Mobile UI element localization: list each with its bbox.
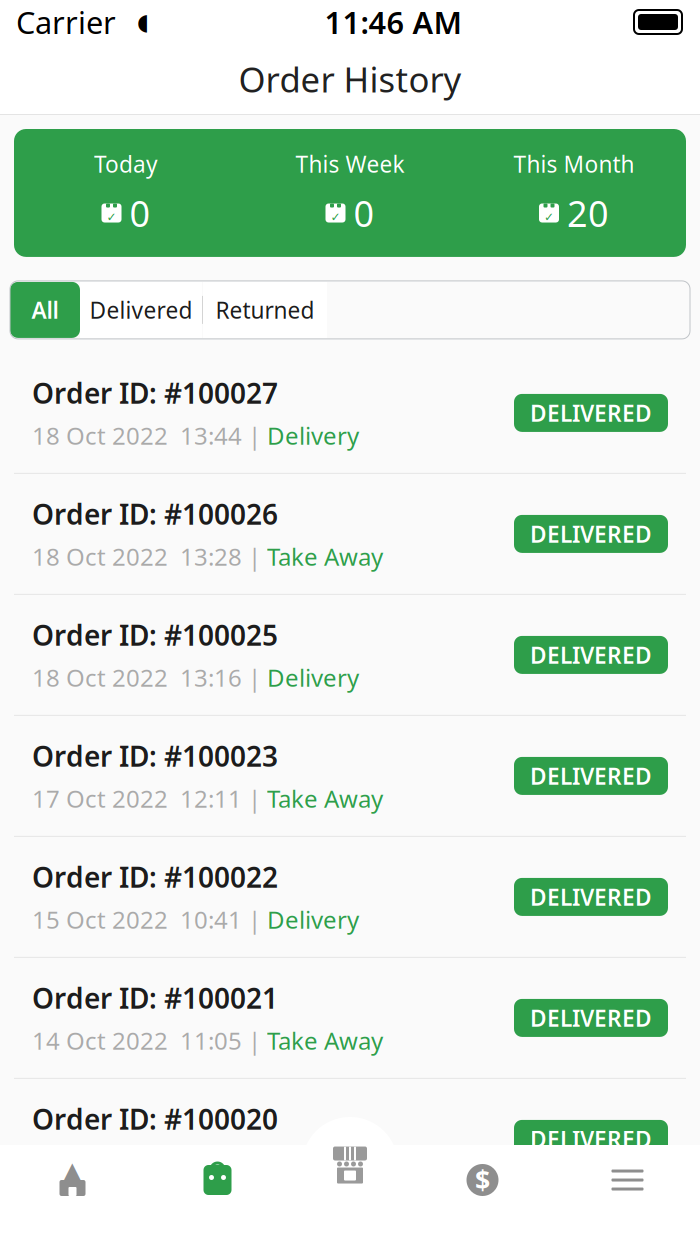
staticText: 11:46 AM: [324, 2, 461, 42]
staticText: Order ID: #100026: [32, 495, 278, 533]
staticText: 18 Oct 2022 13:28: [32, 541, 242, 572]
staticText: Delivered: [89, 295, 192, 325]
staticText: DELIVERED: [530, 640, 652, 670]
staticText: |: [248, 662, 261, 693]
staticText: Order ID: #100022: [32, 858, 278, 896]
button[interactable]: Order ID: #100025: [0, 595, 700, 715]
button[interactable]: All: [10, 282, 80, 338]
staticText: All: [31, 295, 58, 325]
button[interactable]: Returned: [203, 282, 327, 338]
staticText: |: [248, 783, 261, 814]
staticText: This Week: [295, 149, 404, 179]
button[interactable]: Orders: [145, 1145, 290, 1215]
button[interactable]: Order ID: #100026: [0, 474, 700, 594]
staticText: This Month: [513, 149, 634, 179]
staticText: 14 Oct 2022 11:01: [32, 1146, 242, 1177]
staticText: Take Away: [267, 541, 383, 572]
staticText: ◖: [137, 9, 149, 35]
staticText: Order ID: #100020: [32, 1100, 278, 1138]
staticText: Delivery: [267, 662, 359, 693]
button[interactable]: Store: [302, 1117, 398, 1213]
staticText: Order ID: #100023: [32, 737, 278, 775]
staticText: 17 Oct 2022 12:11: [32, 783, 242, 814]
staticText: ✓: [106, 210, 116, 224]
staticText: $: [475, 1162, 490, 1198]
staticText: DELIVERED: [530, 761, 652, 791]
staticText: 0: [129, 189, 150, 237]
button[interactable]: Menu: [555, 1145, 700, 1215]
staticText: ▲: [61, 1155, 84, 1189]
staticText: Take Away: [267, 783, 383, 814]
staticText: DELIVERED: [530, 1124, 652, 1154]
staticText: DELIVERED: [530, 519, 652, 549]
staticText: 14 Oct 2022 11:05: [32, 1025, 242, 1056]
staticText: |: [248, 541, 261, 572]
staticText: ✓: [544, 210, 554, 224]
staticText: Order ID: #100021: [32, 979, 278, 1017]
staticText: Take Away: [267, 1146, 383, 1177]
staticText: DELIVERED: [530, 1003, 652, 1033]
button[interactable]: Order ID: #100021: [0, 958, 700, 1078]
button[interactable]: Order ID: #100020: [0, 1079, 700, 1199]
staticText: ✓: [330, 210, 340, 224]
staticText: Delivery: [267, 420, 359, 451]
staticText: |: [248, 904, 261, 935]
staticText: Today: [94, 149, 158, 179]
staticText: Take Away: [267, 1025, 383, 1056]
button[interactable]: Order ID: #100023: [0, 716, 700, 836]
staticText: Returned: [215, 295, 314, 325]
button[interactable]: Payments: [410, 1145, 555, 1215]
staticText: Carrier: [16, 2, 116, 42]
staticText: 18 Oct 2022 13:44: [32, 420, 242, 451]
button[interactable]: Home: [0, 1145, 145, 1215]
staticText: Order ID: #100025: [32, 616, 278, 654]
staticText: 20: [567, 189, 609, 237]
button[interactable]: Order ID: #100027: [0, 353, 700, 473]
staticText: DELIVERED: [530, 882, 652, 912]
staticText: 15 Oct 2022 10:41: [32, 904, 242, 935]
staticText: DELIVERED: [530, 398, 652, 428]
button[interactable]: Delivered: [80, 282, 202, 338]
staticText: 18 Oct 2022 13:16: [32, 662, 242, 693]
staticText: 0: [353, 189, 374, 237]
button[interactable]: Order ID: #100022: [0, 837, 700, 957]
staticText: |: [248, 1025, 261, 1056]
staticText: Delivery: [267, 904, 359, 935]
staticText: Order History: [238, 56, 461, 102]
staticText: |: [248, 420, 261, 451]
staticText: Order ID: #100027: [32, 374, 278, 412]
